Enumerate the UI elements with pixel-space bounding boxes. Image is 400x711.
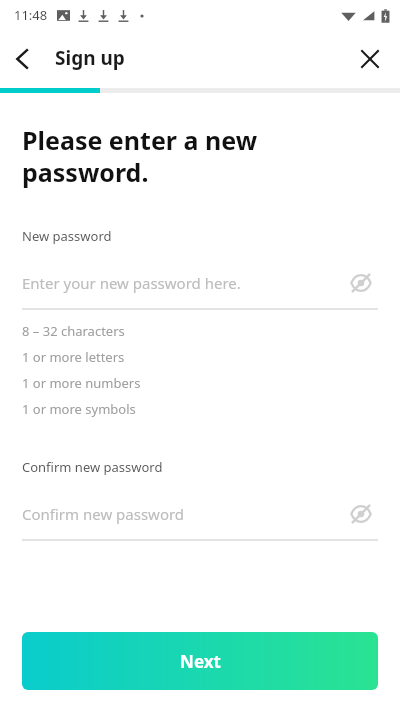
staticText: Confirm new password [22, 504, 344, 524]
staticText: Next [180, 650, 221, 673]
staticText: Please enter a new password. [22, 123, 258, 189]
staticText: 1 or more symbols [22, 400, 136, 418]
button[interactable]: Show confirm password [344, 497, 378, 531]
button[interactable]: Show new password [344, 266, 378, 300]
staticText: 1 or more numbers [22, 374, 141, 392]
staticText: 11:48 [14, 6, 48, 24]
staticText: New password [22, 227, 112, 245]
staticText: Confirm new password [22, 458, 163, 476]
staticText: 8 – 32 characters [22, 322, 125, 340]
staticText: Sign up [55, 45, 125, 71]
button[interactable]: Next [22, 632, 378, 690]
staticText: 1 or more letters [22, 348, 125, 366]
staticText: Enter your new password here. [22, 273, 344, 293]
button[interactable]: Back [0, 36, 46, 82]
button[interactable]: Close [348, 37, 392, 81]
